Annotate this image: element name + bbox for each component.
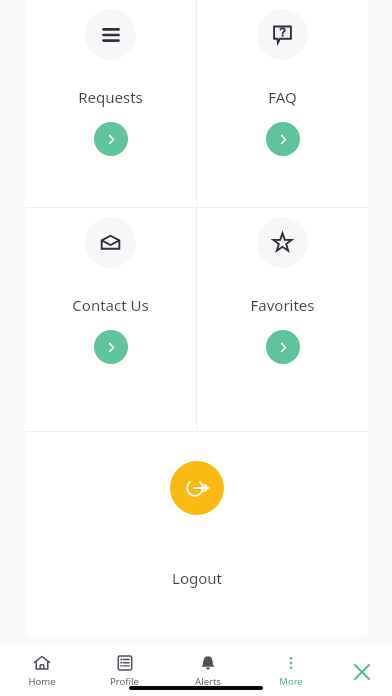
staticText: Requests xyxy=(78,87,143,107)
button[interactable]: Alerts xyxy=(166,645,249,696)
button[interactable]: Contact Us xyxy=(25,208,196,431)
button[interactable]: Open Contact Us xyxy=(94,330,128,364)
staticText: Alerts xyxy=(195,675,221,688)
button[interactable]: Requests xyxy=(25,0,196,207)
staticText: Favorites xyxy=(250,295,315,315)
button[interactable]: FAQ xyxy=(197,0,368,207)
staticText: FAQ xyxy=(268,87,297,107)
button[interactable]: Favorites xyxy=(197,208,368,431)
button[interactable]: Logout xyxy=(25,432,368,636)
button[interactable]: Open FAQ xyxy=(266,122,300,156)
button[interactable]: Home xyxy=(0,645,83,696)
other: Logout xyxy=(170,461,224,515)
staticText: More xyxy=(279,675,303,688)
button[interactable]: Open Favorites xyxy=(266,330,300,364)
button[interactable]: Open Requests xyxy=(94,122,128,156)
staticText: Contact Us xyxy=(72,295,149,315)
button[interactable]: Close xyxy=(332,645,392,696)
button[interactable]: More xyxy=(249,645,332,696)
staticText: Home xyxy=(28,675,56,688)
staticText: Logout xyxy=(172,568,222,588)
button[interactable]: Profile xyxy=(83,645,166,696)
staticText: Profile xyxy=(110,675,139,688)
